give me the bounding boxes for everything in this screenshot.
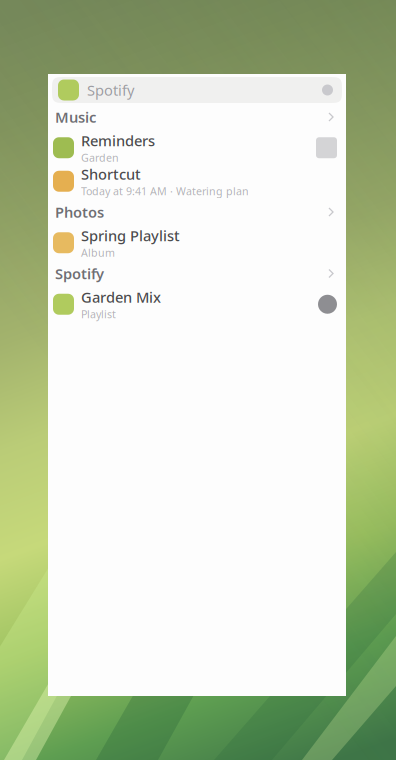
staticText: Photos bbox=[55, 202, 104, 222]
button[interactable]: Shortcut bbox=[48, 164, 346, 198]
staticText: Shortcut bbox=[81, 164, 141, 184]
staticText: Garden bbox=[81, 150, 119, 165]
staticText: Garden Mix bbox=[81, 287, 161, 307]
staticText: Today at 9:41 AM · Watering plan bbox=[81, 184, 249, 198]
button[interactable]: Show more Music bbox=[327, 111, 336, 123]
staticText: Spotify bbox=[87, 80, 134, 100]
staticText: Album bbox=[81, 245, 115, 260]
staticText: Spotify bbox=[55, 264, 104, 283]
button[interactable]: Spring Playlist bbox=[48, 226, 346, 259]
button[interactable]: Garden Mix bbox=[48, 287, 346, 321]
button[interactable]: Show more Spotify bbox=[327, 267, 336, 279]
staticText: Reminders bbox=[81, 131, 155, 150]
button[interactable]: Show more Photos bbox=[327, 206, 336, 218]
button[interactable]: Spotify bbox=[52, 77, 342, 103]
staticText: Spring Playlist bbox=[81, 226, 180, 245]
button[interactable]: Reminders bbox=[48, 131, 346, 164]
staticText: Music bbox=[55, 107, 96, 127]
staticText: Playlist bbox=[81, 307, 116, 321]
